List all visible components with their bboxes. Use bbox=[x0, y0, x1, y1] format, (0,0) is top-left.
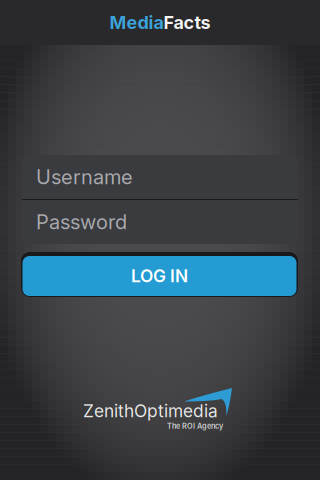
staticText: Facts bbox=[163, 12, 210, 33]
staticText: ZenithOptimedia bbox=[83, 400, 218, 421]
staticText: The ROI Agency bbox=[167, 422, 223, 430]
staticText: Username bbox=[36, 165, 133, 189]
staticText: LOG IN bbox=[131, 265, 188, 286]
staticText: Media bbox=[109, 12, 163, 33]
staticText: Password bbox=[36, 210, 127, 234]
button[interactable]: LOG IN bbox=[21, 252, 298, 297]
